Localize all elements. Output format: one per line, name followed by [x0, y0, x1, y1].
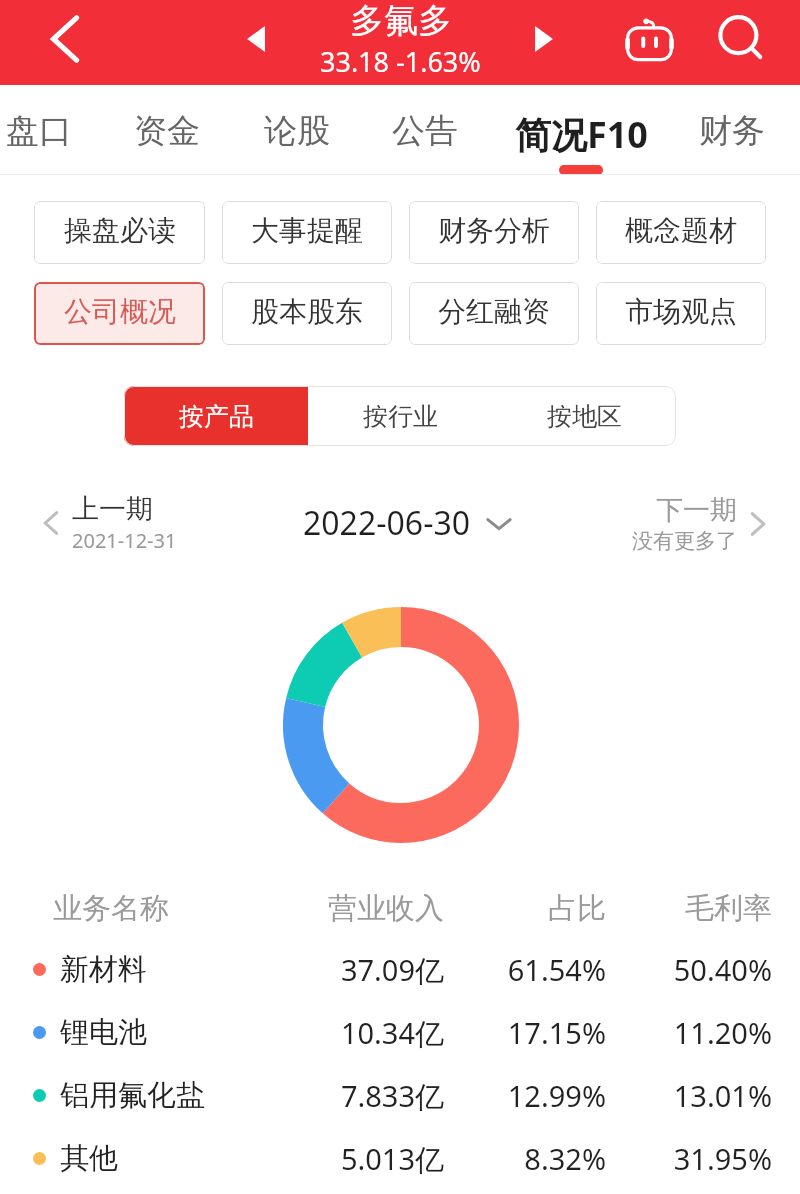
button[interactable]: 资金 [105, 85, 229, 180]
button[interactable]: 操盘必读 [34, 201, 205, 264]
staticText: 锂电池 [60, 1014, 147, 1051]
staticText: 8.32% [446, 1139, 606, 1178]
staticText: 公告 [392, 110, 458, 152]
button[interactable]: 财务 [670, 85, 794, 180]
staticText: 简况F10 [515, 110, 648, 159]
button[interactable]: 按行业 [308, 386, 492, 446]
button[interactable]: Next stock [517, 12, 571, 66]
staticText: 2021-12-31 [72, 527, 177, 554]
staticText: 占比 [446, 890, 606, 927]
staticText: 大事提醒 [251, 213, 363, 248]
staticText: 操盘必读 [64, 213, 176, 248]
staticText: 11.20% [612, 1013, 772, 1052]
staticText: 论股 [264, 110, 330, 152]
staticText: 概念题材 [625, 213, 737, 248]
staticText: 分红融资 [438, 294, 550, 329]
staticText: 下一期 [656, 493, 737, 527]
button[interactable]: 公告 [363, 85, 487, 180]
staticText: 按地区 [547, 401, 622, 432]
button[interactable]: 概念题材 [596, 201, 766, 264]
staticText: 5.013亿 [284, 1139, 444, 1179]
staticText: 财务分析 [438, 213, 550, 248]
staticText: 市场观点 [625, 294, 737, 329]
button[interactable]: 按产品 [124, 386, 308, 446]
button[interactable]: Back [30, 4, 100, 74]
button[interactable]: 分红融资 [409, 282, 579, 345]
staticText: 其他 [60, 1140, 118, 1177]
button[interactable]: 新材料 [0, 938, 800, 1001]
staticText: 铝用氟化盐 [60, 1077, 205, 1114]
button[interactable]: Previous stock [229, 12, 283, 66]
button[interactable]: 其他 [0, 1127, 800, 1190]
staticText: 按产品 [179, 401, 254, 432]
staticText: 7.833亿 [284, 1076, 444, 1116]
staticText: 资金 [134, 110, 200, 152]
button[interactable]: Search [710, 7, 774, 71]
staticText: 50.40% [612, 950, 772, 989]
staticText: 上一期 [72, 492, 153, 526]
staticText: 毛利率 [612, 890, 772, 927]
button[interactable]: 上一期 [38, 492, 177, 554]
button[interactable]: 公司概况 [34, 282, 205, 345]
staticText: 13.01% [612, 1076, 772, 1115]
button[interactable]: 大事提醒 [222, 201, 392, 264]
staticText: 股本股东 [251, 294, 363, 329]
staticText: 没有更多了 [632, 528, 737, 554]
button[interactable]: 铝用氟化盐 [0, 1064, 800, 1127]
staticText: 10.34亿 [284, 1013, 444, 1053]
staticText: 31.95% [612, 1139, 772, 1178]
staticText: 12.99% [446, 1076, 606, 1115]
staticText: 公司概况 [64, 294, 176, 329]
staticText: 新材料 [60, 951, 147, 988]
button[interactable]: 论股 [235, 85, 359, 180]
staticText: 按行业 [363, 401, 438, 432]
staticText: 17.15% [446, 1013, 606, 1052]
button[interactable]: 按地区 [492, 386, 676, 446]
button[interactable]: 盘口 [0, 85, 101, 180]
button[interactable]: AI assistant [619, 7, 679, 67]
button[interactable]: 简况F10 [505, 85, 657, 180]
staticText: 33.18 -1.63% [320, 43, 481, 80]
button[interactable]: 下一期 [632, 493, 771, 554]
button[interactable]: 股本股东 [222, 282, 392, 345]
staticText: 财务 [699, 110, 765, 152]
staticText: 37.09亿 [284, 950, 444, 990]
button[interactable]: 财务分析 [409, 201, 579, 264]
button[interactable]: 锂电池 [0, 1001, 800, 1064]
staticText: 61.54% [446, 950, 606, 989]
staticText: 营业收入 [284, 890, 444, 927]
button[interactable]: 2022-06-30 [303, 501, 513, 545]
staticText: 2022-06-30 [303, 501, 471, 545]
staticText: 盘口 [6, 110, 72, 152]
staticText: 多氟多 [350, 0, 452, 42]
staticText: 业务名称 [53, 890, 169, 927]
button[interactable]: 市场观点 [596, 282, 766, 345]
